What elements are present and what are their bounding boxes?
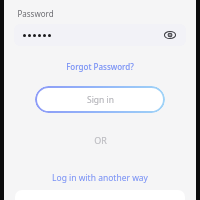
staticText: Password bbox=[17, 8, 54, 19]
staticText: OR bbox=[94, 134, 107, 146]
button[interactable]: Log in with another way bbox=[46, 170, 154, 186]
staticText: Log in with another way bbox=[52, 172, 148, 184]
staticText: Sign in bbox=[87, 94, 114, 106]
button[interactable]: Show password bbox=[163, 28, 177, 42]
button[interactable]: Sign in bbox=[35, 86, 165, 113]
button[interactable]: Forgot Password? bbox=[60, 59, 140, 74]
staticText: Forgot Password? bbox=[66, 61, 134, 72]
button[interactable]: Show password bbox=[14, 24, 186, 46]
